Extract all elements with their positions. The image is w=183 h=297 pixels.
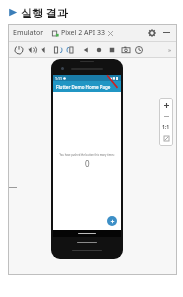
staticText: Emulator: [13, 28, 44, 38]
button[interactable]: Settings: [146, 27, 157, 38]
staticText: 0: [85, 158, 90, 169]
staticText: Pixel 2 API 33: [61, 28, 105, 38]
button[interactable]: Rotate left: [51, 43, 64, 56]
button[interactable]: Increment: [107, 216, 117, 226]
button[interactable]: Zoom in: [160, 100, 172, 111]
button[interactable]: Volume down: [38, 43, 51, 56]
button[interactable]: More: [165, 45, 174, 54]
button[interactable]: Fit to screen: [160, 133, 172, 144]
other: Close tab: [108, 31, 113, 36]
button[interactable]: Minimize: [161, 27, 172, 38]
button[interactable]: Pixel 2 API 33: [51, 28, 114, 38]
button[interactable]: 1:1: [160, 122, 172, 133]
staticText: »: [168, 46, 172, 54]
button[interactable]: Zoom out: [160, 111, 172, 122]
button[interactable]: Home: [92, 43, 105, 56]
staticText: 1:1: [162, 124, 170, 131]
staticText: Flutter Demo Home Page: [56, 84, 111, 90]
button[interactable]: Record: [132, 43, 145, 56]
staticText: 1:11: [55, 76, 62, 81]
staticText: 실행 결과: [21, 5, 68, 20]
staticText: You have pushed the button this many tim…: [59, 153, 115, 157]
button[interactable]: Back: [79, 43, 92, 56]
button[interactable]: Screenshot: [119, 43, 132, 56]
button[interactable]: Volume up: [25, 43, 38, 56]
button[interactable]: Rotate right: [64, 43, 77, 56]
button[interactable]: Overview: [105, 43, 118, 56]
button[interactable]: Power: [12, 43, 25, 56]
